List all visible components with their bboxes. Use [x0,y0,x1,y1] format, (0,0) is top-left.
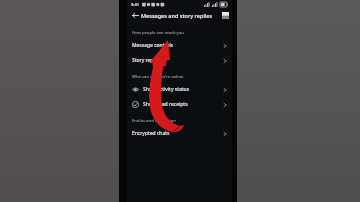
button[interactable]: Profile [222,12,229,19]
staticText: End-to-end encryption [132,118,176,124]
button[interactable]: Back [130,10,140,20]
staticText: Message controls [132,42,223,49]
staticText: Show read receipts [143,101,223,108]
staticText: How people can reach you [132,30,184,36]
button[interactable]: Encrypted chats [127,126,232,141]
staticText: Story replies [132,57,223,64]
staticText: Show activity status [143,86,223,93]
button[interactable]: Show read receipts [127,97,232,112]
staticText: Messages and story replies [141,12,213,19]
button[interactable]: Message controls [127,38,232,53]
button[interactable]: Show activity status [127,82,232,97]
staticText: 9:41 [131,2,139,7]
button[interactable]: Story replies [127,53,232,68]
staticText: Encrypted chats [132,130,223,137]
staticText: Who can see you're online [132,74,184,80]
